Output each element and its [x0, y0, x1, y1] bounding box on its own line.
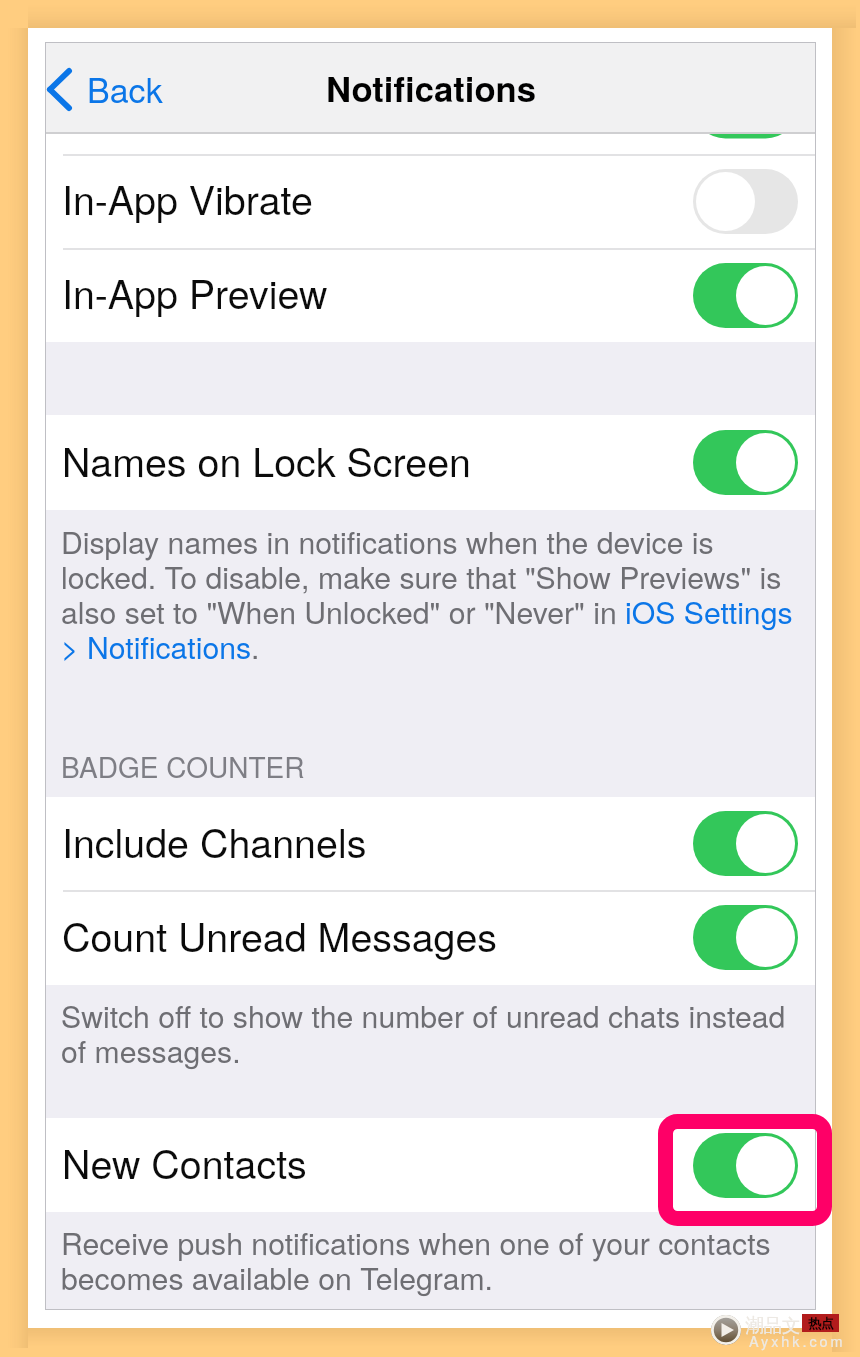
- staticText: In-App Preview: [62, 264, 328, 320]
- staticText: 热点: [808, 1315, 834, 1331]
- staticText: In-App Vibrate: [62, 170, 313, 226]
- staticText: Receive push notifications when one of y…: [61, 1220, 804, 1299]
- staticText: Back: [87, 64, 163, 113]
- button[interactable]: Names on Lock Screen: [45, 415, 816, 510]
- staticText: Names on Lock Screen: [62, 432, 471, 488]
- staticText: Switch off to show the number of unread …: [61, 993, 804, 1072]
- staticText: BADGE COUNTER: [61, 746, 305, 786]
- button[interactable]: In-App Preview: [45, 248, 816, 342]
- staticText: Include Channels: [62, 813, 367, 869]
- button[interactable]: Switch on: [693, 905, 798, 970]
- button[interactable]: Include Channels: [45, 797, 816, 890]
- button[interactable]: Switch on: [693, 811, 798, 876]
- button[interactable]: Switch on: [693, 1133, 798, 1198]
- staticText: 潮品文: [745, 1314, 801, 1337]
- staticText: Display names in notifications when the …: [61, 519, 804, 668]
- staticText: Ayxhk.com: [749, 1330, 846, 1351]
- button[interactable]: In-App Vibrate: [45, 154, 816, 248]
- staticText: New Contacts: [62, 1134, 307, 1190]
- button[interactable]: Back: [47, 42, 163, 134]
- staticText: Notifications: [326, 63, 537, 113]
- button[interactable]: New Contacts: [45, 1118, 816, 1212]
- button[interactable]: Count Unread Messages: [45, 890, 816, 985]
- button[interactable]: Switch on: [693, 263, 798, 328]
- button[interactable]: Switch on: [693, 430, 798, 495]
- button[interactable]: Switch off: [693, 169, 798, 234]
- staticText: Count Unread Messages: [62, 907, 498, 963]
